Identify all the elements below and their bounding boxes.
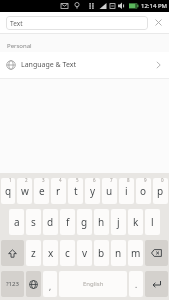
staticText: Personal — [7, 42, 32, 50]
button[interactable]: b — [94, 240, 109, 266]
button[interactable]: o — [136, 178, 151, 204]
button[interactable] — [1, 240, 24, 266]
button[interactable]: h — [94, 209, 109, 235]
staticText: 4 — [59, 178, 62, 183]
button[interactable]: q — [1, 178, 15, 204]
staticText: c — [65, 246, 70, 260]
button[interactable]: Text — [6, 16, 148, 30]
staticText: . — [135, 279, 138, 290]
button[interactable]: . — [129, 271, 143, 297]
button[interactable] — [154, 18, 163, 27]
staticText: , — [49, 281, 52, 292]
button[interactable]: g — [77, 209, 92, 235]
staticText: 7 — [110, 178, 113, 183]
staticText: z — [31, 246, 36, 260]
button[interactable] — [145, 271, 168, 297]
staticText: g — [81, 215, 88, 229]
staticText: ?123 — [6, 280, 19, 288]
staticText: o — [140, 184, 147, 198]
button[interactable]: m — [128, 240, 143, 266]
button[interactable]: w — [17, 178, 32, 204]
staticText: 2 — [25, 178, 28, 183]
staticText: 9 — [144, 178, 147, 183]
button[interactable]: x — [43, 240, 58, 266]
button[interactable]: a — [9, 209, 24, 235]
staticText: 0 — [161, 178, 164, 183]
staticText: Language & Text — [21, 60, 76, 70]
button[interactable]: f — [60, 209, 75, 235]
button[interactable]: i — [119, 178, 134, 204]
staticText: h — [98, 215, 105, 229]
staticText: s — [31, 215, 36, 229]
staticText: t — [74, 184, 78, 198]
staticText: k — [133, 215, 139, 229]
button[interactable]: j — [111, 209, 126, 235]
button[interactable]: n — [111, 240, 126, 266]
staticText: Text — [10, 19, 23, 28]
staticText: m — [131, 246, 141, 260]
button[interactable]: t — [68, 178, 83, 204]
staticText: English — [83, 280, 104, 288]
staticText: w — [21, 184, 29, 198]
button[interactable]: English — [59, 271, 127, 297]
staticText: a — [14, 215, 20, 229]
button[interactable] — [145, 240, 168, 266]
button[interactable]: c — [60, 240, 75, 266]
button[interactable]: ?123 — [1, 271, 24, 297]
button[interactable]: p — [153, 178, 168, 204]
staticText: l — [151, 215, 154, 229]
staticText: 5 — [76, 178, 79, 183]
staticText: 6 — [93, 178, 96, 183]
button[interactable]: k — [128, 209, 143, 235]
staticText: p — [157, 184, 164, 198]
button[interactable]: Language & Text — [0, 52, 169, 78]
button[interactable]: , — [43, 271, 57, 297]
button[interactable]: e — [34, 178, 49, 204]
staticText: 12:14 PM — [141, 2, 167, 10]
staticText: q — [5, 184, 12, 198]
button[interactable]: s — [26, 209, 41, 235]
button[interactable]: d — [43, 209, 58, 235]
staticText: 8 — [127, 178, 130, 183]
staticText: n — [115, 246, 122, 260]
staticText: u — [106, 184, 113, 198]
staticText: b — [98, 246, 105, 260]
staticText: j — [117, 215, 120, 229]
button[interactable]: l — [145, 209, 160, 235]
staticText: d — [47, 215, 54, 229]
button[interactable]: v — [77, 240, 92, 266]
button[interactable]: y — [85, 178, 100, 204]
button[interactable]: z — [26, 240, 41, 266]
staticText: e — [39, 184, 45, 198]
staticText: i — [125, 184, 128, 198]
staticText: 1 — [9, 178, 12, 183]
staticText: 3 — [42, 178, 45, 183]
staticText: r — [56, 184, 61, 198]
staticText: f — [66, 215, 70, 229]
staticText: v — [82, 246, 88, 260]
staticText: y — [90, 184, 96, 198]
button[interactable] — [26, 271, 41, 297]
button[interactable]: u — [102, 178, 117, 204]
button[interactable]: r — [51, 178, 66, 204]
staticText: x — [48, 246, 54, 260]
